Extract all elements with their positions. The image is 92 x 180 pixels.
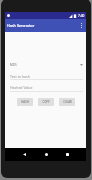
button[interactable]: CLEAR (59, 98, 75, 106)
button[interactable]: Home (41, 148, 52, 161)
button[interactable]: COPY (38, 98, 54, 106)
button[interactable]: Recents (62, 148, 73, 161)
staticText: HASH (21, 100, 29, 104)
button[interactable]: More options (77, 19, 86, 32)
staticText: Hash Generator (7, 23, 35, 28)
button[interactable]: Back (19, 148, 30, 161)
staticText: Text to hash (10, 74, 30, 79)
button[interactable]: MD5 (10, 59, 83, 70)
button[interactable]: HASH (17, 98, 33, 106)
staticText: COPY (42, 100, 50, 104)
staticText: MD5 (10, 63, 17, 67)
staticText: Hashed Value (10, 85, 33, 90)
staticText: CLEAR (63, 100, 72, 104)
staticText: 7:40 (78, 14, 85, 18)
